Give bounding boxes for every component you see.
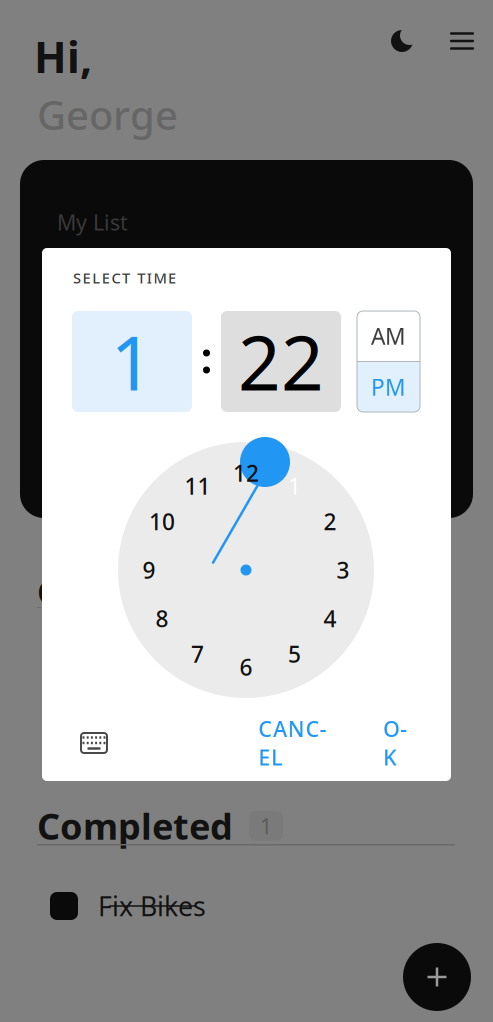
- staticText: 5: [288, 639, 301, 669]
- staticText: AM: [371, 321, 406, 351]
- button[interactable]: 3: [326, 553, 360, 587]
- staticText: SELECT TIME: [73, 268, 176, 287]
- button[interactable]: 2: [313, 504, 347, 538]
- button[interactable]: PM: [357, 362, 420, 412]
- staticText: 7: [191, 639, 204, 669]
- button[interactable]: 12: [229, 456, 263, 490]
- button[interactable]: 6: [229, 650, 263, 684]
- button[interactable]: 8: [145, 601, 179, 635]
- staticText: 10: [149, 506, 175, 536]
- button[interactable]: AM: [357, 311, 420, 361]
- button[interactable]: Dark mode: [380, 19, 424, 63]
- staticText: My List: [57, 208, 128, 236]
- staticText: 2: [323, 506, 336, 536]
- button[interactable]: CANCEL: [242, 723, 343, 763]
- staticText: OK: [383, 715, 407, 771]
- button[interactable]: 1: [277, 469, 311, 503]
- staticText: Fix Bikes: [98, 888, 206, 924]
- button[interactable]: OK: [373, 723, 417, 763]
- staticText: 1: [110, 312, 153, 411]
- button[interactable]: 1: [72, 311, 192, 412]
- staticText: Completed: [37, 802, 233, 850]
- staticText: Hi,: [34, 28, 92, 85]
- staticText: 4: [323, 603, 336, 633]
- button[interactable]: 7: [180, 637, 214, 671]
- button[interactable]: Menu: [440, 19, 484, 63]
- staticText: PM: [371, 372, 406, 402]
- button[interactable]: 5: [277, 637, 311, 671]
- button[interactable]: Switch to text input: [72, 723, 116, 763]
- button[interactable]: 4: [313, 601, 347, 635]
- staticText: 11: [184, 471, 210, 501]
- staticText: 9: [142, 555, 155, 585]
- button[interactable]: 22: [221, 311, 341, 412]
- button[interactable]: 11: [180, 469, 214, 503]
- staticText: C: [37, 568, 59, 614]
- staticText: 3: [336, 555, 349, 585]
- button[interactable]: Fix Bikes: [50, 883, 470, 929]
- staticText: 6: [239, 652, 252, 682]
- staticText: 8: [155, 603, 168, 633]
- staticText: 1: [288, 471, 301, 501]
- button[interactable]: 10: [145, 504, 179, 538]
- staticText: 22: [238, 312, 324, 411]
- button[interactable]: 9: [132, 553, 166, 587]
- staticText: 12: [233, 458, 259, 488]
- staticText: George: [37, 88, 178, 141]
- button[interactable]: Add task: [403, 943, 471, 1011]
- staticText: CANCEL: [258, 715, 327, 771]
- staticText: 1: [260, 812, 272, 840]
